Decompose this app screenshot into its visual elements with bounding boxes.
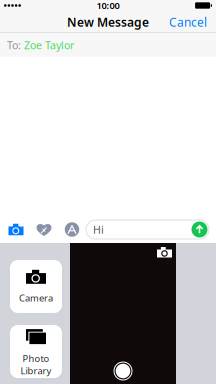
staticText: New Message (67, 14, 149, 30)
button[interactable]: Take photo (112, 360, 134, 382)
button[interactable]: Photo (10, 325, 62, 378)
staticText: Photo (22, 352, 49, 364)
button[interactable]: Camera (2, 216, 30, 243)
button[interactable]: Apps (58, 216, 86, 243)
staticText: 10:00 (96, 0, 119, 12)
button[interactable]: Cancel (160, 10, 216, 34)
button[interactable]: Digital Touch (30, 216, 58, 243)
staticText: Zoe Taylor (21, 38, 74, 52)
button[interactable]: Switch camera (153, 243, 176, 261)
button[interactable]: Camera (10, 260, 62, 313)
staticText: To: (7, 38, 21, 52)
staticText: Hi (93, 222, 104, 237)
staticText: Camera (19, 292, 53, 304)
staticText: Cancel (169, 14, 207, 30)
button[interactable]: Send (191, 221, 209, 237)
staticText: Library (20, 364, 51, 377)
